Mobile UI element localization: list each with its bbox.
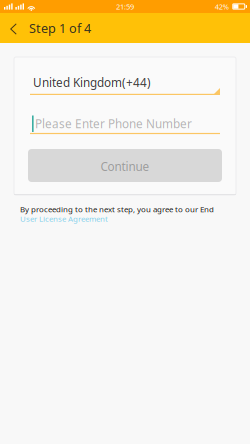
button[interactable]: Continue (28, 149, 222, 182)
staticText: Step 1 of 4 (29, 19, 91, 37)
button[interactable]: Back (4, 13, 27, 43)
staticText: Please Enter Phone Number (35, 116, 192, 132)
staticText: Continue (100, 158, 149, 174)
button[interactable]: United Kingdom(+44) (30, 71, 220, 99)
button[interactable]: User License Agreement (20, 213, 108, 224)
staticText: 42% (215, 1, 229, 12)
staticText: User License Agreement (20, 213, 108, 224)
staticText: By proceeding to the next step, you agre… (20, 204, 214, 214)
staticText: United Kingdom(+44) (33, 74, 151, 90)
staticText: 21:59 (116, 1, 134, 12)
